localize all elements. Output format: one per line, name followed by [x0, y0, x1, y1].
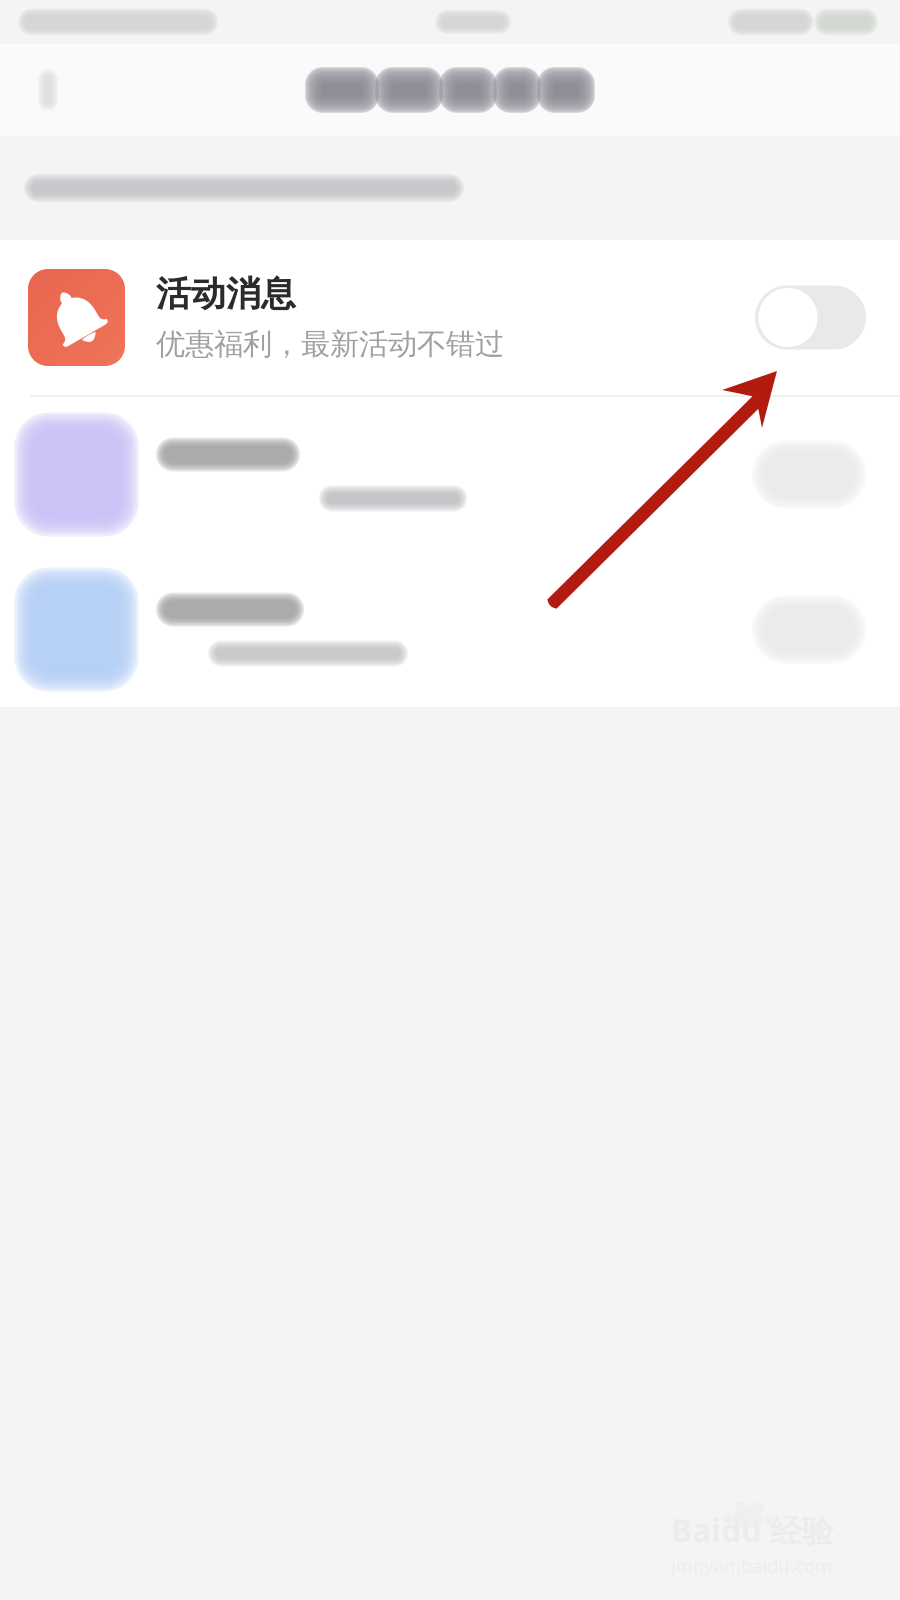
button[interactable]: 活动消息 [0, 240, 900, 395]
button[interactable] [0, 552, 900, 707]
button[interactable] [0, 397, 900, 552]
staticText: 优惠福利，最新活动不错过 [156, 326, 504, 362]
staticText: Baidu 经验 [671, 1508, 834, 1551]
button[interactable]: Back [10, 52, 86, 128]
staticText: 活动消息 [156, 273, 296, 315]
